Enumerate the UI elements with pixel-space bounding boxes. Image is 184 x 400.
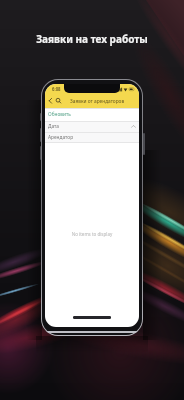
staticText: Заявки на тех работы [0, 32, 184, 46]
button[interactable]: Обновить [48, 111, 71, 118]
button[interactable]: Дата [45, 121, 139, 132]
staticText: Дата [48, 123, 60, 130]
staticText: Арендатор [48, 134, 74, 141]
staticText: No items to display [45, 231, 139, 237]
button[interactable]: Арендатор [45, 132, 139, 142]
staticText: Заявки от арендаторов [70, 98, 125, 105]
staticText: 6:08 [52, 86, 61, 92]
button[interactable] [48, 97, 63, 106]
